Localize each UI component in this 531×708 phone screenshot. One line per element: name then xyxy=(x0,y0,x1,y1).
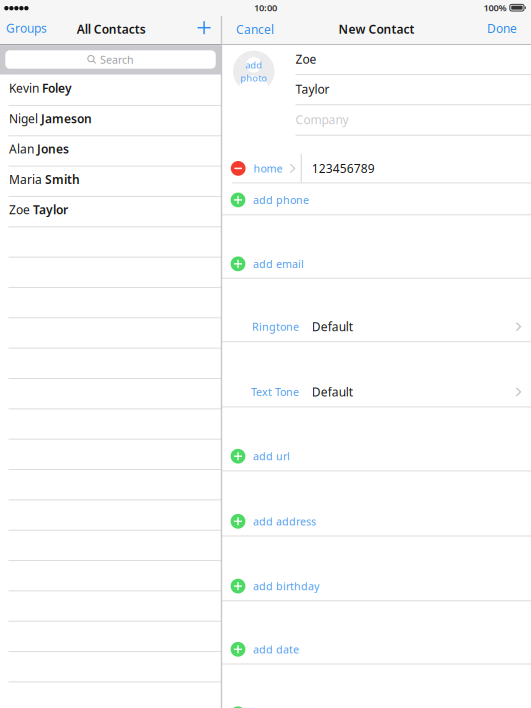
staticText: Smith xyxy=(45,171,80,187)
button[interactable]: Maria xyxy=(9,173,221,185)
staticText: add url xyxy=(253,449,290,463)
staticText: Zoe xyxy=(295,51,316,67)
button[interactable]: home xyxy=(246,161,296,175)
staticText: All Contacts xyxy=(77,21,146,37)
button[interactable]: Cancel xyxy=(236,21,274,37)
staticText: add xyxy=(245,59,262,71)
button[interactable]: Remove phone number xyxy=(222,161,246,176)
staticText: 100% xyxy=(484,1,507,14)
button[interactable]: add birthday xyxy=(222,570,531,602)
staticText: Taylor xyxy=(33,202,68,217)
button[interactable]: Text Tone xyxy=(222,376,531,408)
staticText: add phone xyxy=(253,193,309,207)
button[interactable]: add email xyxy=(222,248,531,280)
staticText: 123456789 xyxy=(312,160,375,176)
staticText: Nigel xyxy=(9,111,41,126)
button[interactable]: Add contact xyxy=(198,21,211,34)
staticText: home xyxy=(253,161,282,175)
staticText: Taylor xyxy=(295,81,329,97)
staticText: 10:00 xyxy=(254,1,277,14)
staticText: add email xyxy=(253,257,304,271)
button[interactable]: Alan xyxy=(9,143,221,155)
button[interactable]: Kevin xyxy=(9,82,221,94)
button[interactable]: Nigel xyxy=(9,112,221,124)
button[interactable]: add address xyxy=(222,505,531,537)
staticText: Maria xyxy=(9,171,45,187)
staticText: Ringtone xyxy=(252,320,299,334)
staticText: Jameson xyxy=(41,111,92,126)
button[interactable]: add related name xyxy=(222,698,531,708)
staticText: Kevin xyxy=(9,80,42,96)
staticText: add date xyxy=(253,642,299,656)
button[interactable]: Done xyxy=(487,20,517,36)
button[interactable]: Groups xyxy=(6,20,47,36)
button[interactable]: add phone xyxy=(222,184,531,216)
staticText: Default xyxy=(312,319,353,335)
button[interactable]: add url xyxy=(222,440,531,472)
staticText: add birthday xyxy=(253,579,319,593)
staticText: Default xyxy=(312,384,353,400)
staticText: Zoe xyxy=(9,202,33,217)
staticText: Company xyxy=(295,111,348,127)
staticText: Alan xyxy=(9,141,37,157)
staticText: photo xyxy=(240,72,267,84)
staticText: Search xyxy=(100,52,134,67)
staticText: Text Tone xyxy=(251,385,299,399)
button[interactable]: Ringtone xyxy=(222,311,531,343)
staticText: Cancel xyxy=(236,21,274,37)
button[interactable]: Add photo xyxy=(233,51,274,92)
staticText: Jones xyxy=(37,141,69,157)
staticText: Groups xyxy=(6,20,47,36)
staticText: New Contact xyxy=(338,21,414,37)
staticText: Foley xyxy=(42,80,72,96)
staticText: add address xyxy=(253,514,316,528)
staticText: Done xyxy=(487,20,517,36)
button[interactable]: add date xyxy=(222,633,531,665)
button[interactable]: Zoe xyxy=(9,204,221,216)
